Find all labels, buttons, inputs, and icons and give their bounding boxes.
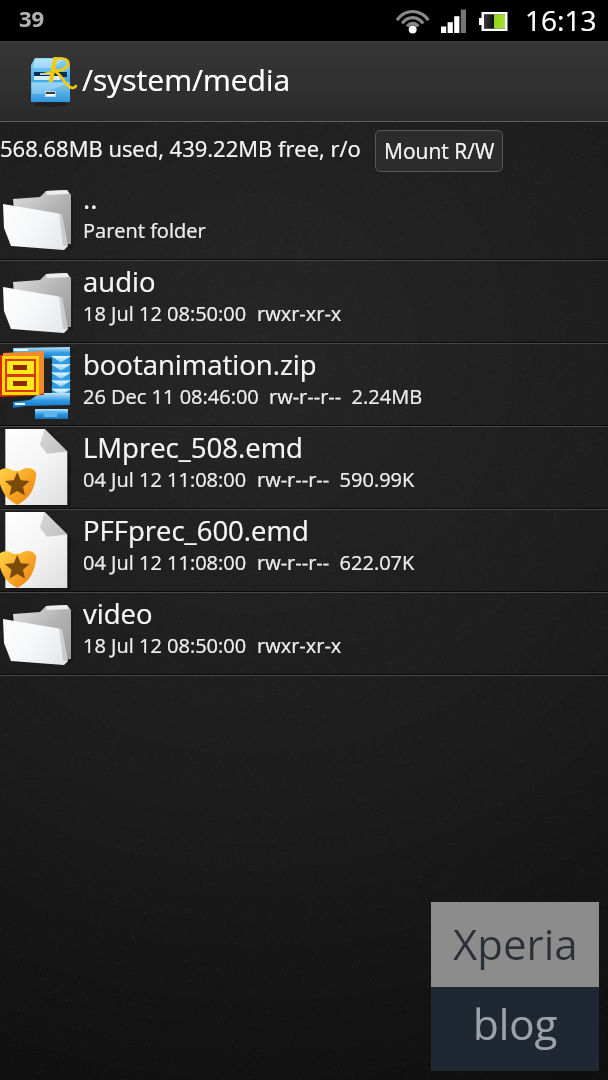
- button[interactable]: audio: [0, 261, 608, 344]
- staticText: bootanimation.zip: [83, 346, 317, 383]
- button[interactable]: ..: [0, 178, 608, 261]
- staticText: 26 Dec 11 08:46:00: [83, 383, 259, 410]
- staticText: rwxr-xr-x: [257, 632, 342, 659]
- staticText: audio: [83, 263, 156, 300]
- button[interactable]: LMprec_508.emd: [0, 427, 608, 510]
- button[interactable]: PFFprec_600.emd: [0, 510, 608, 593]
- staticText: 568.68MB used, 439.22MB free, r/o: [0, 133, 361, 163]
- staticText: 16:13: [525, 1, 597, 39]
- staticText: PFFprec_600.emd: [83, 512, 309, 549]
- staticText: 04 Jul 12 11:08:00: [83, 466, 247, 493]
- staticText: 39: [19, 3, 45, 33]
- staticText: rwxr-xr-x: [257, 300, 342, 327]
- button[interactable]: /system/media: [0, 41, 608, 122]
- staticText: 04 Jul 12 11:08:00: [83, 549, 247, 576]
- button[interactable]: bootanimation.zip: [0, 344, 608, 427]
- button[interactable]: Mount R/W: [375, 130, 503, 172]
- staticText: 18 Jul 12 08:50:00: [83, 300, 247, 327]
- staticText: 18 Jul 12 08:50:00: [83, 632, 247, 659]
- staticText: rw-r--r-- 590.99K: [257, 466, 415, 493]
- staticText: video: [83, 595, 153, 632]
- staticText: rw-r--r-- 622.07K: [257, 549, 415, 576]
- button[interactable]: video: [0, 593, 608, 676]
- staticText: Xperia: [453, 915, 578, 972]
- staticText: LMprec_508.emd: [83, 429, 303, 466]
- staticText: rw-r--r-- 2.24MB: [269, 383, 423, 410]
- staticText: /system/media: [82, 59, 291, 100]
- staticText: Parent folder: [83, 217, 206, 244]
- staticText: Mount R/W: [384, 137, 495, 166]
- staticText: ..: [83, 180, 98, 217]
- staticText: blog: [473, 995, 558, 1052]
